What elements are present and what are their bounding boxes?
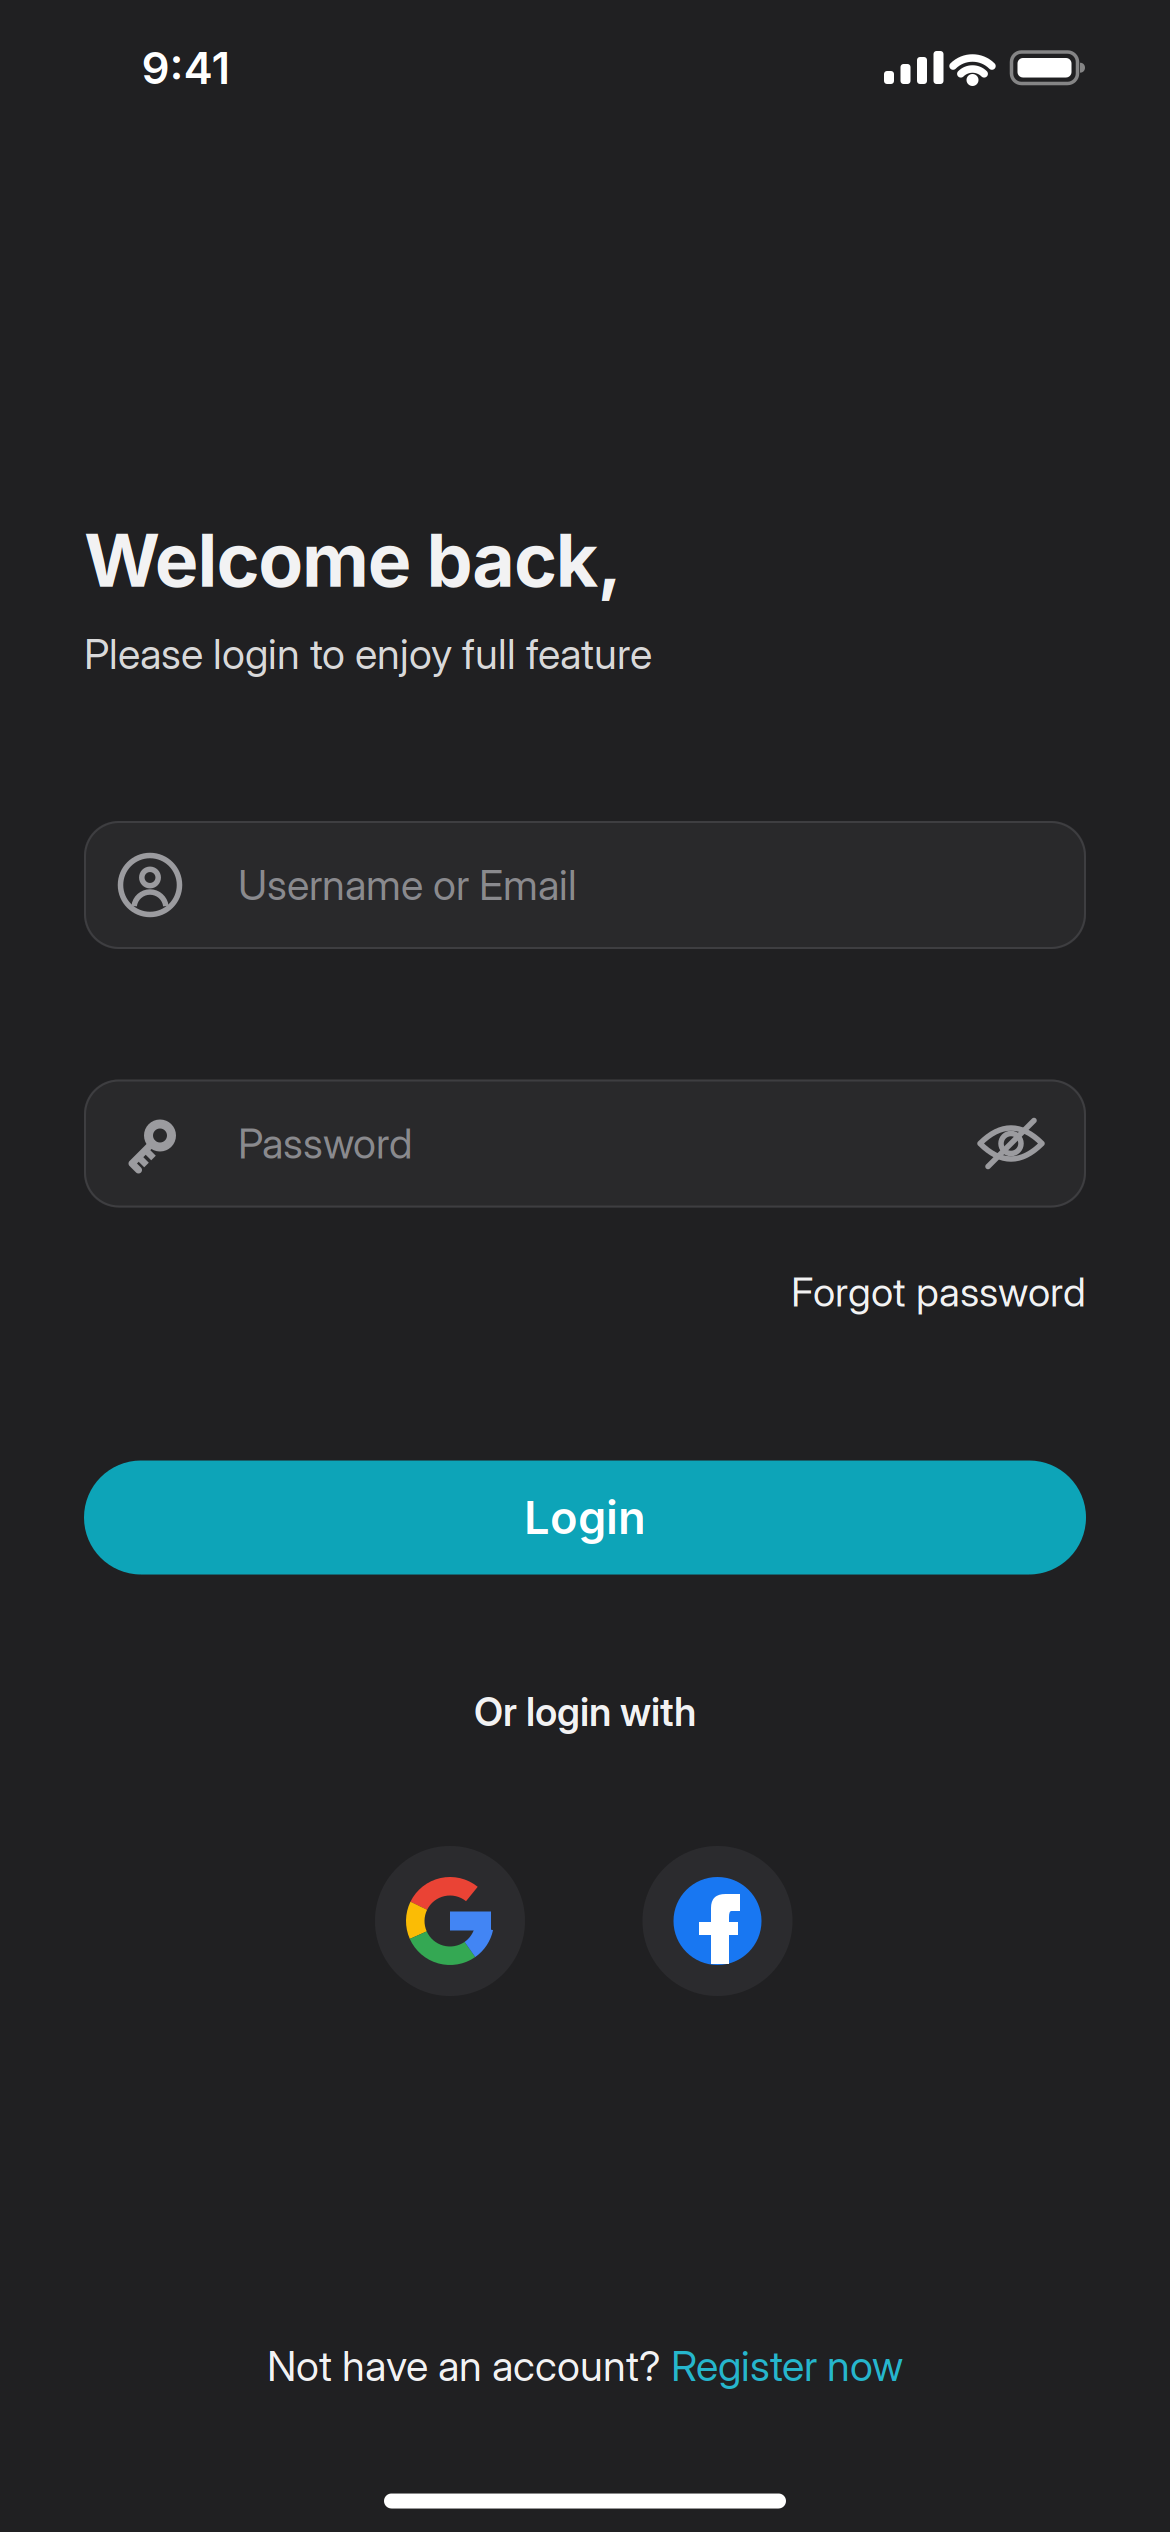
staticText: Please login to enjoy full feature bbox=[84, 630, 652, 678]
button[interactable]: Login with Facebook bbox=[642, 1846, 792, 1996]
button[interactable]: Username or Email bbox=[84, 821, 1086, 949]
staticText: Password bbox=[238, 1119, 412, 1168]
button[interactable]: Login with Google bbox=[375, 1846, 525, 1996]
button[interactable]: Forgot password bbox=[791, 1268, 1086, 1316]
button[interactable]: Login bbox=[84, 1460, 1086, 1574]
staticText: Forgot password bbox=[791, 1268, 1086, 1316]
staticText: Welcome back, bbox=[84, 517, 622, 603]
staticText: Register now bbox=[671, 2342, 903, 2390]
staticText: Username or Email bbox=[238, 861, 577, 909]
button[interactable]: Not have an account? bbox=[267, 2342, 903, 2390]
staticText: Login bbox=[524, 1491, 646, 1544]
staticText: Or login with bbox=[474, 1689, 696, 1735]
button[interactable]: Show password bbox=[978, 1110, 1086, 1176]
staticText: 9:41 bbox=[141, 42, 230, 94]
button[interactable]: Password bbox=[84, 1079, 1086, 1207]
staticText: Not have an account? bbox=[267, 2342, 671, 2390]
